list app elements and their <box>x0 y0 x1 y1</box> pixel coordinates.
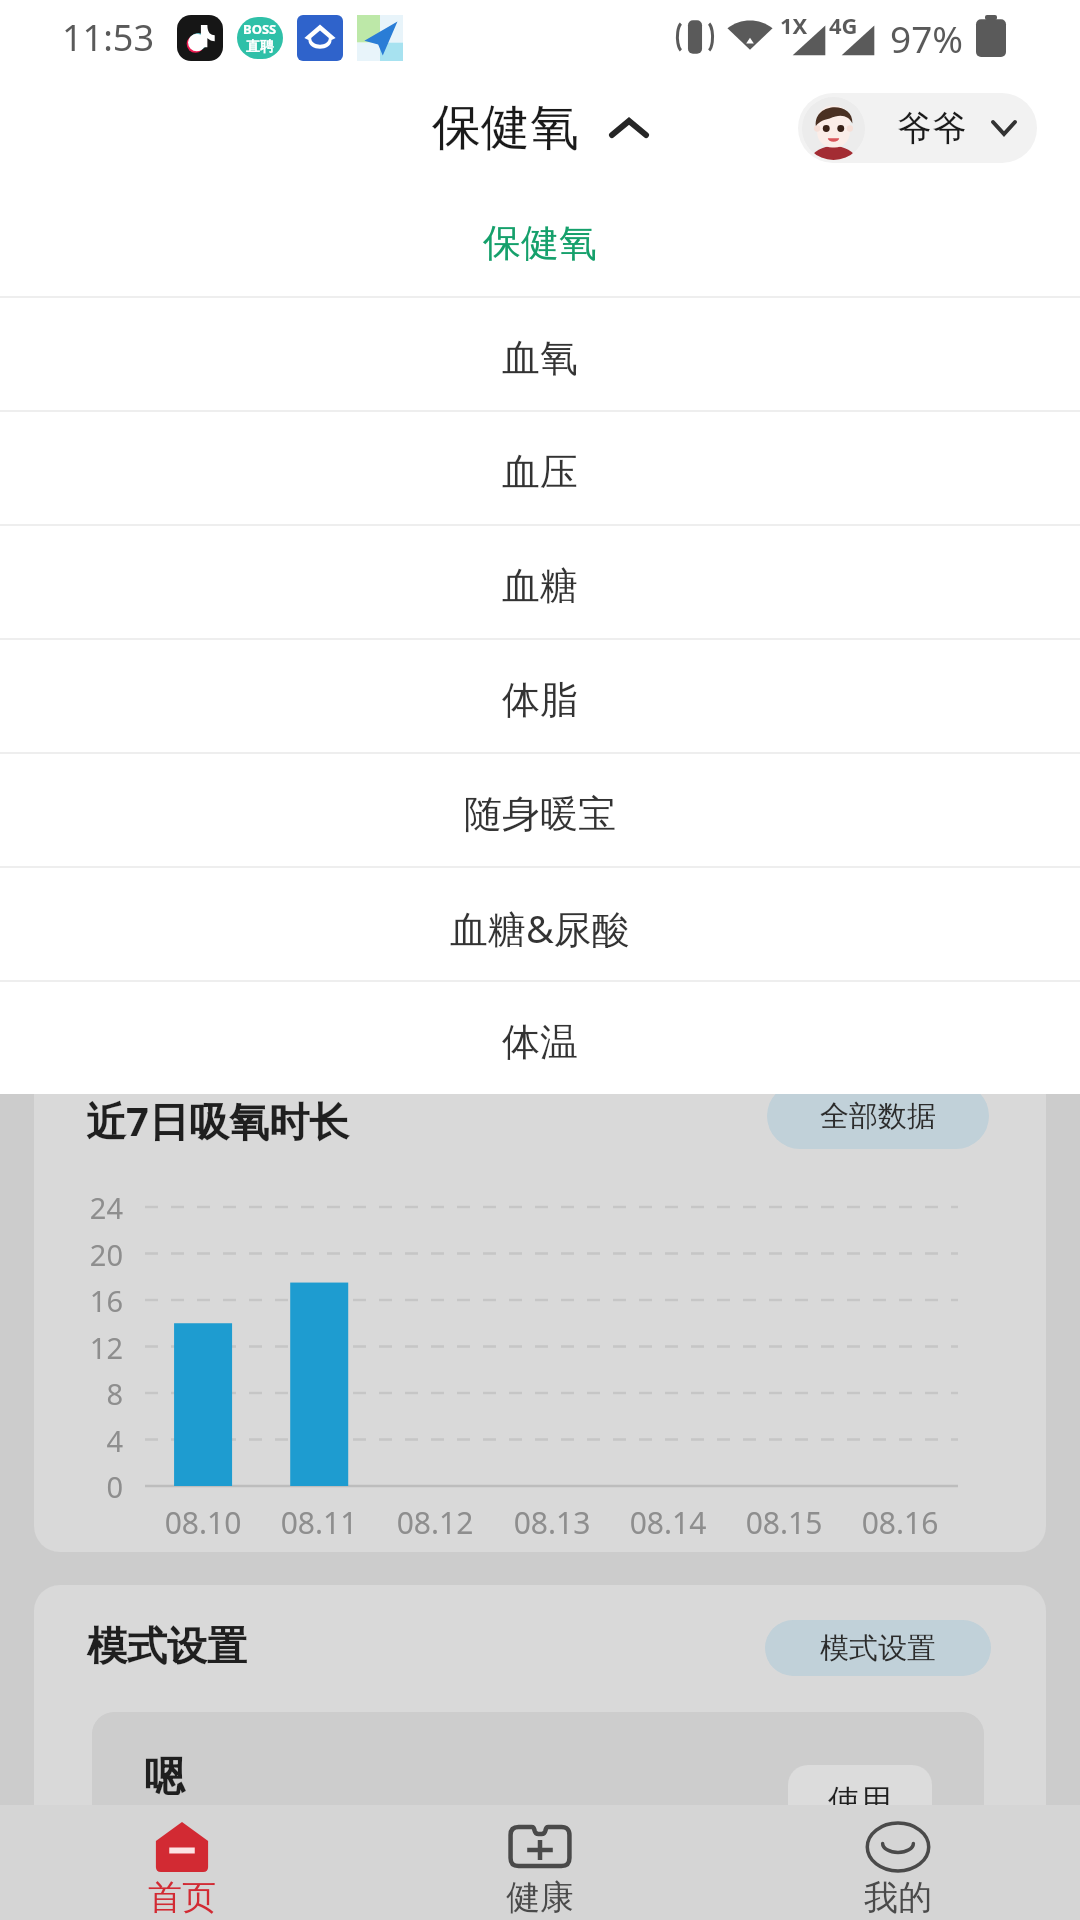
staticText: 97% <box>890 13 964 63</box>
staticText: 11:53 <box>62 13 155 62</box>
staticText: 体脂 <box>502 676 578 724</box>
staticText: 8 <box>34 1374 123 1413</box>
staticText: 0 <box>34 1467 123 1506</box>
staticText: BOSS <box>243 20 277 38</box>
button[interactable]: 血糖&尿酸 <box>0 868 1080 980</box>
button[interactable]: 随身暖宝 <box>0 754 1080 866</box>
staticText: 血压 <box>502 448 578 496</box>
staticText: 1X <box>780 10 808 40</box>
staticText: 16 <box>34 1281 123 1320</box>
staticText: 4 <box>34 1421 123 1460</box>
staticText: 08.10 <box>123 1502 283 1543</box>
button[interactable]: 血氧 <box>0 298 1080 410</box>
staticText: 08.13 <box>472 1502 632 1543</box>
staticText: 随身暖宝 <box>464 790 616 838</box>
button[interactable]: 模式设置 <box>765 1620 991 1676</box>
staticText: 08.12 <box>355 1502 515 1543</box>
staticText: 血糖&尿酸 <box>450 902 630 954</box>
button[interactable]: 体温 <box>0 982 1080 1094</box>
staticText: 健康 <box>506 1876 574 1919</box>
staticText: 爷爷 <box>897 106 967 150</box>
staticText: 体温 <box>502 1018 578 1066</box>
staticText: 08.14 <box>588 1502 748 1543</box>
staticText: 20 <box>34 1235 123 1274</box>
staticText: 08.11 <box>239 1502 399 1543</box>
staticText: 血糖 <box>502 562 578 610</box>
staticText: 近7日吸氧时长 <box>86 1093 349 1148</box>
button[interactable]: 首页 <box>62 1805 302 1920</box>
staticText: 我的 <box>864 1876 932 1919</box>
button[interactable]: 血糖 <box>0 526 1080 638</box>
staticText: 首页 <box>148 1876 216 1919</box>
button[interactable]: 我的 <box>778 1805 1018 1920</box>
button[interactable]: 切换用户 爷爷 <box>798 93 1037 163</box>
button[interactable]: 使用 <box>788 1765 932 1829</box>
staticText: 模式设置 <box>820 1630 936 1667</box>
staticText: 保健氧 <box>432 97 579 159</box>
staticText: 24 <box>34 1188 123 1227</box>
staticText: 4G <box>829 10 858 40</box>
staticText: 嗯 <box>144 1751 184 1801</box>
staticText: 08.16 <box>820 1502 980 1543</box>
staticText: 12 <box>34 1328 123 1367</box>
staticText: 08.15 <box>704 1502 864 1543</box>
button[interactable]: 血压 <box>0 412 1080 524</box>
button[interactable]: 全部数据 <box>767 1083 989 1149</box>
staticText: 直聘 <box>246 38 274 56</box>
button[interactable]: 保健氧 <box>0 182 1080 296</box>
button[interactable]: 保健氧 收起菜单 <box>432 97 649 159</box>
staticText: 模式设置 <box>87 1621 247 1671</box>
staticText: 使用 <box>828 1781 892 1821</box>
staticText: 全部数据 <box>820 1098 936 1135</box>
staticText: 保健氧 <box>483 219 597 267</box>
staticText: 血氧 <box>502 334 578 382</box>
button[interactable]: 体脂 <box>0 640 1080 752</box>
button[interactable]: 健康 <box>420 1805 660 1920</box>
